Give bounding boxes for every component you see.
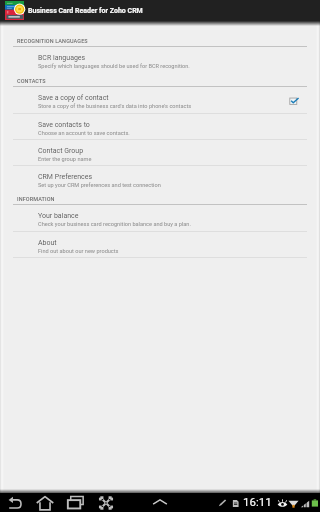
button[interactable]: Save contacts to	[0, 114, 320, 140]
button[interactable]: Home	[36, 494, 54, 512]
staticText: Contact Group	[38, 147, 84, 155]
staticText: Specify which languages should be used f…	[38, 62, 190, 69]
button[interactable]: CRM Preferences	[0, 166, 320, 191]
staticText: Business Card Reader for Zoho CRM	[28, 7, 143, 15]
staticText: CONTACTS	[17, 77, 46, 84]
staticText: Enter the group name	[38, 155, 92, 162]
button[interactable]: BCR languages	[0, 47, 320, 73]
button[interactable]: Signal	[300, 499, 310, 509]
button[interactable]: Contact Group	[0, 140, 320, 166]
staticText: BCR languages	[38, 54, 86, 62]
staticText: 16:11	[243, 495, 272, 508]
staticText: About	[38, 239, 57, 247]
staticText: Check your business card recognition bal…	[38, 220, 191, 227]
button[interactable]: Back	[8, 496, 23, 511]
button[interactable]: Developer options	[277, 498, 288, 509]
staticText: Set up your CRM preferences and test con…	[38, 181, 161, 188]
staticText: Save contacts to	[38, 121, 90, 129]
button[interactable]: Wi-Fi	[288, 498, 299, 509]
staticText: CRM Preferences	[38, 173, 93, 181]
staticText: Store a copy of the business card's data…	[38, 102, 192, 109]
staticText: INFORMATION	[17, 195, 55, 202]
button[interactable]: Show notifications	[152, 494, 168, 510]
staticText: Find out about our new products	[38, 247, 119, 254]
button[interactable]: Edit	[217, 498, 227, 508]
button[interactable]: Screenshot	[98, 495, 114, 511]
staticText: Your balance	[38, 212, 79, 220]
button[interactable]: Save a copy of contact	[0, 87, 320, 114]
button[interactable]: Your balance	[0, 205, 320, 232]
button[interactable]: Document	[230, 498, 241, 509]
staticText: Choose an account to save contacts.	[38, 129, 130, 136]
button[interactable]: Battery	[310, 498, 320, 508]
button[interactable]: About	[0, 232, 320, 258]
staticText: Save a copy of contact	[38, 94, 109, 102]
staticText: RECOGNITION LANGUAGES	[17, 37, 88, 44]
other: Business Card Reader icon	[5, 1, 24, 20]
button[interactable]: Recent apps	[67, 494, 84, 511]
button[interactable]: Save a copy of contact checkbox	[288, 93, 300, 105]
